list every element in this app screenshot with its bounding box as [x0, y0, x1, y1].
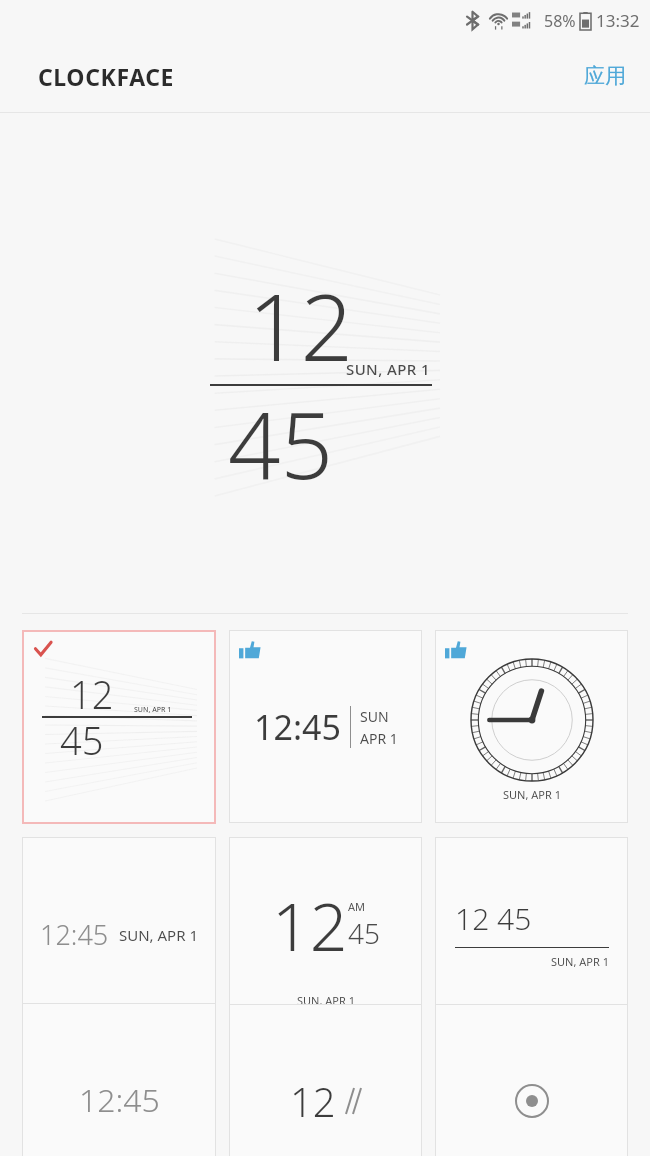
staticText: SUN, APR 1 [551, 954, 609, 969]
other: Recommended [239, 639, 261, 661]
staticText: CLOCKFACE [38, 61, 175, 92]
staticText: 45 [348, 914, 380, 952]
button[interactable]: 12 [22, 630, 216, 824]
button[interactable]: 12:45 [229, 630, 422, 823]
staticText: 应用 [584, 63, 626, 89]
staticText: SUN [360, 707, 389, 726]
staticText: 13:32 [596, 9, 640, 32]
staticText: SUN, APR 1 [503, 787, 561, 802]
staticText: APR 1 [360, 729, 398, 748]
button[interactable]: 12 45 [435, 837, 628, 1030]
staticText: SUN, APR 1 [119, 925, 198, 945]
staticText: 12:45 [254, 704, 341, 750]
staticText: 45 [228, 381, 334, 496]
button[interactable]: 12:45 [22, 837, 216, 1031]
button[interactable]: 12 [229, 837, 422, 1030]
button[interactable]: 12:45 [22, 1003, 216, 1156]
staticText: SUN, APR 1 [134, 705, 172, 715]
other: Selected [34, 640, 52, 658]
staticText: 12 [248, 263, 354, 388]
button[interactable] [435, 1004, 628, 1156]
staticText: AM [348, 899, 366, 914]
button[interactable]: 12 [229, 1004, 422, 1156]
staticText: 12 [70, 668, 114, 720]
staticText: 12 [290, 1074, 336, 1128]
other: Recommended [445, 639, 467, 661]
button[interactable]: 应用 [560, 49, 650, 103]
button[interactable]: SUN, APR 1 [435, 630, 628, 823]
staticText: 12:45 [79, 1078, 160, 1122]
staticText: 45 [60, 714, 104, 766]
staticText: SUN, APR 1 [297, 993, 355, 1008]
staticText: 58% [544, 10, 576, 32]
staticText: 12:45 [40, 916, 109, 953]
staticText: SUN, APR 1 [346, 359, 430, 379]
staticText: 12 [272, 880, 348, 970]
staticText: 12 45 [455, 898, 532, 939]
